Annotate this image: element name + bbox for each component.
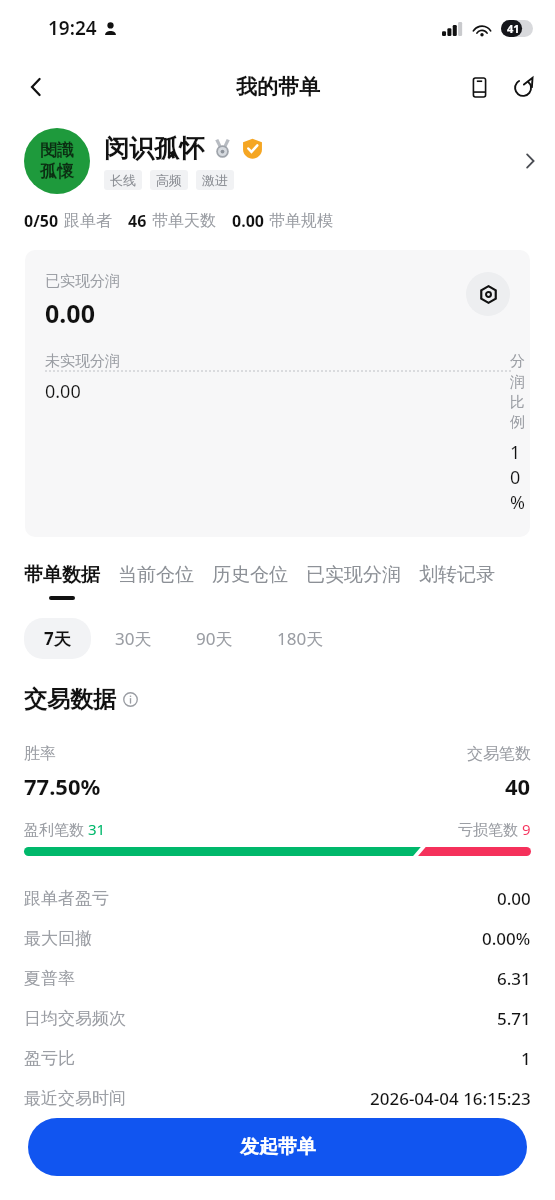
button[interactable]: 90天 bbox=[176, 618, 253, 659]
button[interactable]: 已实现分润 bbox=[306, 563, 401, 596]
staticText: 180天 bbox=[277, 627, 324, 650]
staticText: 跟单者 bbox=[64, 211, 112, 231]
staticText: 带单天数 bbox=[152, 211, 216, 231]
staticText: 31 bbox=[88, 819, 106, 839]
staticText: 发起带单 bbox=[240, 1135, 316, 1159]
staticText: 夏普率 bbox=[24, 968, 75, 989]
staticText: 1 bbox=[521, 1047, 531, 1070]
button[interactable]: 180天 bbox=[257, 618, 344, 659]
button[interactable]: Share bbox=[501, 65, 545, 109]
staticText: 7天 bbox=[44, 627, 71, 650]
staticText: 胜率 bbox=[24, 744, 56, 764]
staticText: 40 bbox=[505, 771, 531, 801]
staticText: 最近交易时间 bbox=[24, 1088, 126, 1109]
staticText: 盈利笔数 bbox=[24, 819, 88, 839]
staticText: 跟单者盈亏 bbox=[24, 888, 109, 909]
staticText: 19:24 bbox=[48, 15, 97, 41]
button[interactable]: 带单数据 bbox=[24, 563, 100, 600]
button[interactable]: 7天 bbox=[24, 618, 91, 659]
staticText: 当前仓位 bbox=[118, 563, 194, 587]
staticText: 閔識 bbox=[40, 140, 74, 161]
staticText: 6.31 bbox=[497, 967, 531, 990]
staticText: 0.00 bbox=[497, 887, 531, 910]
button[interactable]: 当前仓位 bbox=[118, 563, 194, 596]
staticText: 盈亏比 bbox=[24, 1048, 75, 1069]
button[interactable]: 閔識 bbox=[0, 118, 555, 194]
button[interactable]: Back bbox=[12, 63, 60, 111]
staticText: 0.00 bbox=[45, 296, 95, 330]
button[interactable]: 划转记录 bbox=[419, 563, 495, 596]
staticText: 46 bbox=[128, 210, 147, 232]
staticText: 41 bbox=[507, 21, 520, 36]
staticText: 已实现分润 bbox=[306, 563, 401, 587]
staticText: 我的带单 bbox=[236, 74, 320, 100]
staticText: 长线 bbox=[110, 172, 136, 188]
staticText: 30天 bbox=[115, 627, 152, 650]
button[interactable]: Notes bbox=[457, 65, 501, 109]
staticText: 9 bbox=[522, 819, 531, 839]
staticText: 闵识孤怀 bbox=[104, 133, 204, 164]
staticText: 孤懷 bbox=[40, 161, 74, 182]
button[interactable]: Settings bbox=[466, 272, 510, 316]
staticText: 历史仓位 bbox=[212, 563, 288, 587]
staticText: 日均交易频次 bbox=[24, 1008, 126, 1029]
staticText: 90天 bbox=[196, 627, 233, 650]
staticText: 交易数据 bbox=[24, 685, 116, 714]
staticText: 2026-04-04 16:15:23 bbox=[370, 1087, 531, 1110]
staticText: 0.00% bbox=[482, 927, 531, 950]
button[interactable]: 历史仓位 bbox=[212, 563, 288, 596]
staticText: 划转记录 bbox=[419, 563, 495, 587]
staticText: 交易笔数 bbox=[467, 744, 531, 764]
staticText: 0.00 bbox=[45, 379, 81, 404]
button[interactable]: 发起带单 bbox=[28, 1118, 527, 1176]
staticText: 77.50% bbox=[24, 771, 101, 801]
button[interactable]: 已实现分润 bbox=[25, 250, 530, 537]
staticText: 带单数据 bbox=[24, 563, 100, 587]
staticText: 带单规模 bbox=[269, 211, 333, 231]
staticText: 0.00 bbox=[232, 210, 264, 232]
button[interactable]: 30天 bbox=[95, 618, 172, 659]
staticText: 5.71 bbox=[497, 1007, 531, 1030]
staticText: 最大回撤 bbox=[24, 928, 92, 949]
staticText: 激进 bbox=[202, 172, 228, 188]
staticText: 高频 bbox=[156, 172, 182, 188]
staticText: 已实现分润 bbox=[45, 272, 120, 291]
staticText: 0/50 bbox=[24, 210, 59, 232]
staticText: 未实现分润 bbox=[45, 352, 120, 371]
staticText: 亏损笔数 bbox=[458, 819, 522, 839]
